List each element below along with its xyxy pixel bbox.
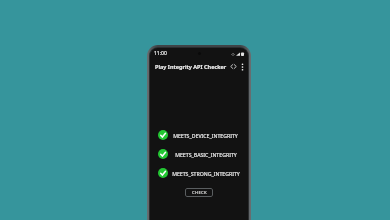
button[interactable]: MEETS_DEVICE_INTEGRITY: [150, 128, 248, 142]
staticText: Play Integrity API Checker: [155, 63, 227, 71]
staticText: MEETS_STRONG_INTEGRITY: [172, 170, 240, 177]
button[interactable]: MEETS_STRONG_INTEGRITY: [150, 166, 248, 180]
staticText: 11:00: [154, 50, 167, 57]
button[interactable]: MEETS_BASIC_INTEGRITY: [150, 147, 248, 161]
button[interactable]: View JSON: [228, 61, 239, 72]
staticText: MEETS_DEVICE_INTEGRITY: [173, 132, 238, 139]
button[interactable]: More options: [240, 61, 244, 72]
button[interactable]: CHECK: [185, 188, 213, 197]
staticText: CHECK: [192, 190, 207, 196]
staticText: MEETS_BASIC_INTEGRITY: [175, 151, 237, 158]
